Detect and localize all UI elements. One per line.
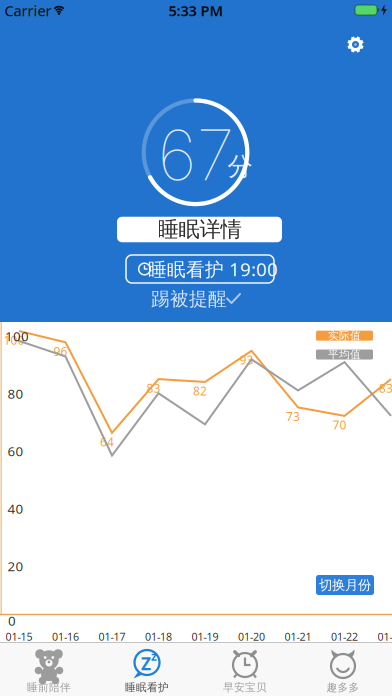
staticText: 70 [332,417,346,433]
staticText: 实际值 [328,329,361,342]
staticText: 睡眠详情 [157,216,241,243]
button[interactable]: Z [98,643,196,696]
staticText: 67 [157,113,234,197]
staticText: z [151,648,157,664]
staticText: 100 [5,327,29,345]
button[interactable]: 睡前陪伴 [0,643,98,696]
staticText: 01-22 [331,629,358,644]
staticText: 睡眠看护 [125,681,169,694]
staticText: 平均值 [328,348,361,361]
staticText: 趣多多 [326,681,359,694]
staticText: 40 [7,500,23,517]
button[interactable]: 切换月份 [316,575,374,595]
staticText: 01-21 [284,629,311,644]
staticText: 切换月份 [319,577,371,593]
staticText: 60 [7,442,23,460]
staticText: 96 [53,343,67,359]
button[interactable]: 趣多多 [294,643,392,696]
staticText: 80 [7,385,23,402]
staticText: 83 [146,380,160,396]
staticText: 83 [379,380,392,396]
staticText: 分 [227,151,252,182]
staticText: 93 [239,352,253,368]
staticText: 01-23 [377,629,392,644]
staticText: 早安宝贝 [223,681,267,694]
button[interactable]: 早安宝贝 [196,643,294,696]
staticText: 100 [3,332,24,348]
staticText: Carrier [4,1,51,20]
staticText: 睡前陪伴 [27,681,71,694]
staticText: 睡眠看护 19:00 [148,257,278,281]
staticText: 01-17 [98,629,125,644]
button[interactable]: Settings [333,22,377,66]
staticText: 01-16 [52,629,79,644]
staticText: 5:33 PM [168,1,223,20]
staticText: 踢被提醒 [151,287,227,310]
staticText: 01-19 [191,629,218,644]
staticText: 64 [100,434,114,450]
button[interactable]: 睡眠详情 [117,217,282,242]
staticText: 0 [8,612,16,629]
staticText: 01-15 [5,629,32,644]
staticText: 82 [193,383,207,399]
button[interactable]: 睡眠看护 19:00 [126,255,274,283]
button[interactable]: 踢被提醒 [154,290,242,308]
staticText: 20 [7,557,23,575]
staticText: Z [141,652,151,675]
staticText: 01-20 [238,629,265,644]
staticText: 01-18 [145,629,172,644]
staticText: 73 [286,408,300,424]
